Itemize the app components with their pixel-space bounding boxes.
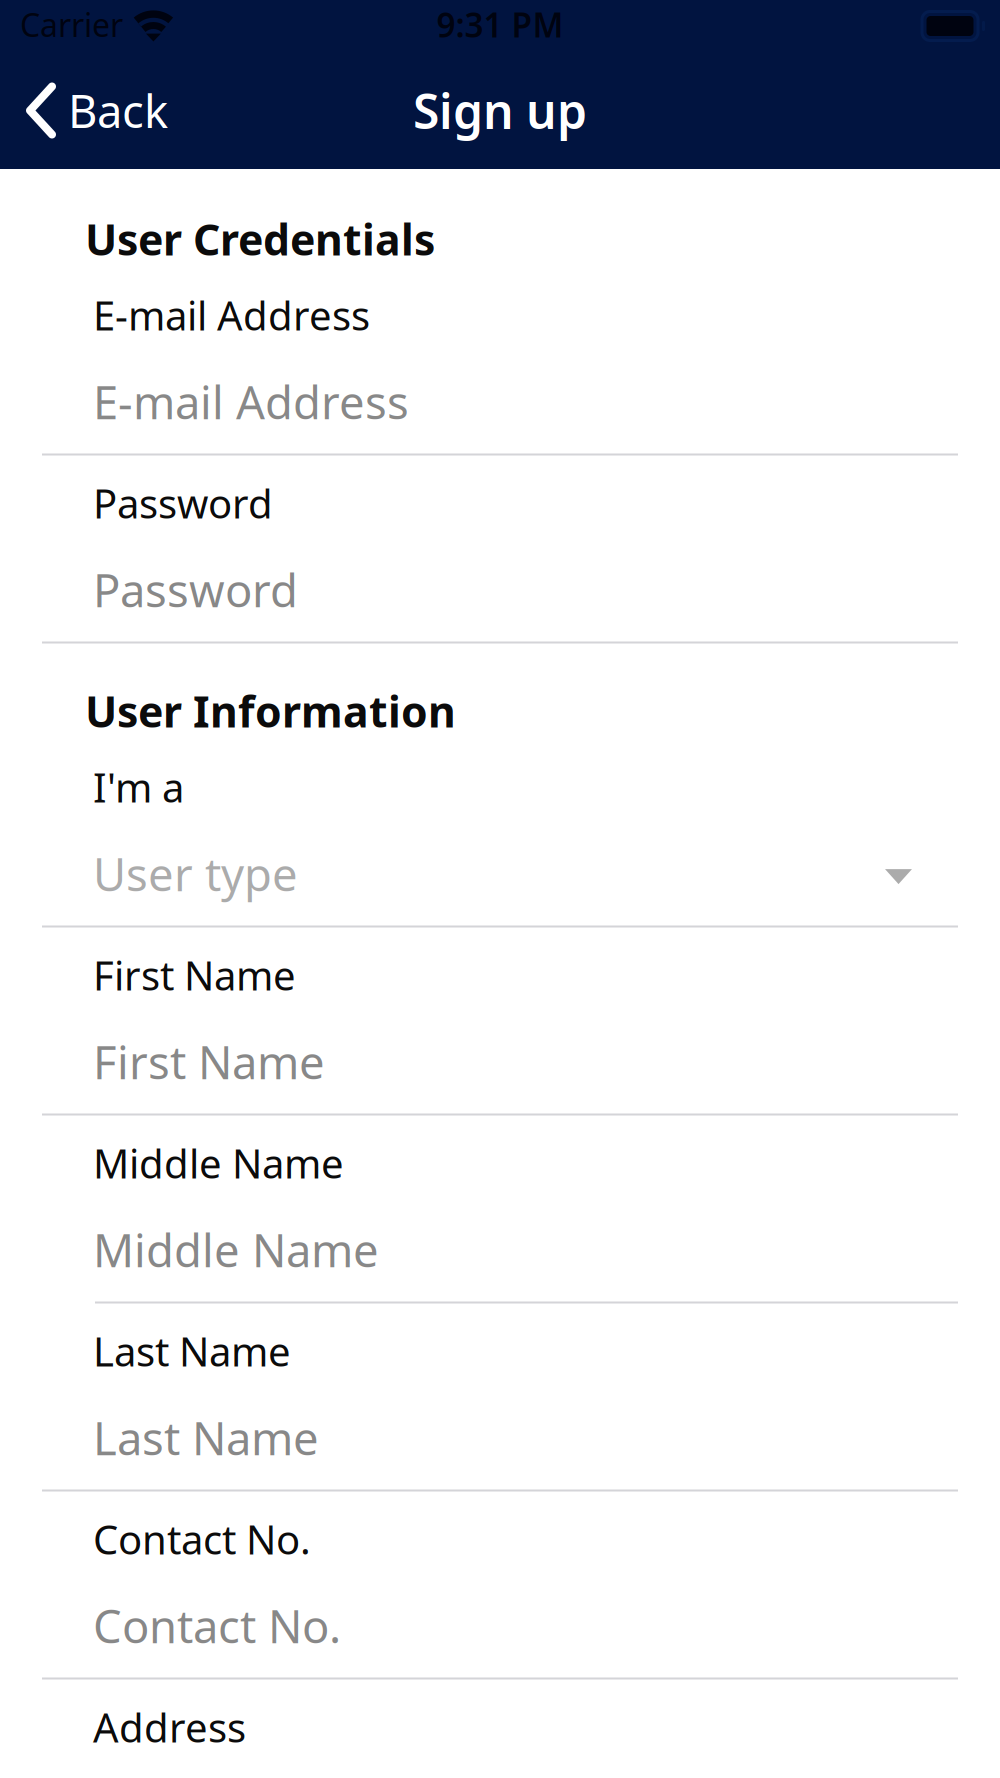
- staticText: I'm a: [93, 760, 184, 814]
- button[interactable]: Password: [0, 455, 1000, 643]
- staticText: Middle Name: [93, 1136, 344, 1190]
- button[interactable]: E-mail Address: [0, 267, 1000, 455]
- staticText: Contact No.: [93, 1512, 311, 1566]
- button[interactable]: Address: [0, 1679, 1000, 1778]
- staticText: User Credentials: [85, 210, 435, 267]
- staticText: First Name: [93, 1031, 325, 1092]
- button[interactable]: I'm a: [0, 739, 1000, 927]
- button[interactable]: Last Name: [0, 1303, 1000, 1491]
- staticText: Sign up: [413, 79, 587, 142]
- staticText: User Information: [85, 682, 456, 739]
- button[interactable]: Middle Name: [0, 1115, 1000, 1303]
- staticText: E-mail Address: [93, 371, 409, 432]
- staticText: Password: [93, 476, 273, 530]
- staticText: User type: [93, 843, 298, 904]
- staticText: Back: [68, 80, 168, 141]
- staticText: Last Name: [93, 1324, 291, 1378]
- staticText: Carrier: [20, 3, 123, 46]
- staticText: Middle Name: [93, 1219, 379, 1280]
- staticText: Last Name: [93, 1407, 319, 1468]
- button[interactable]: Back: [0, 52, 192, 169]
- staticText: 9:31 PM: [436, 2, 563, 47]
- staticText: Contact No.: [93, 1595, 341, 1656]
- staticText: Password: [93, 559, 298, 620]
- staticText: Address: [93, 1700, 246, 1754]
- staticText: First Name: [93, 948, 296, 1002]
- button[interactable]: Contact No.: [0, 1491, 1000, 1679]
- staticText: E-mail Address: [93, 288, 370, 342]
- button[interactable]: First Name: [0, 927, 1000, 1115]
